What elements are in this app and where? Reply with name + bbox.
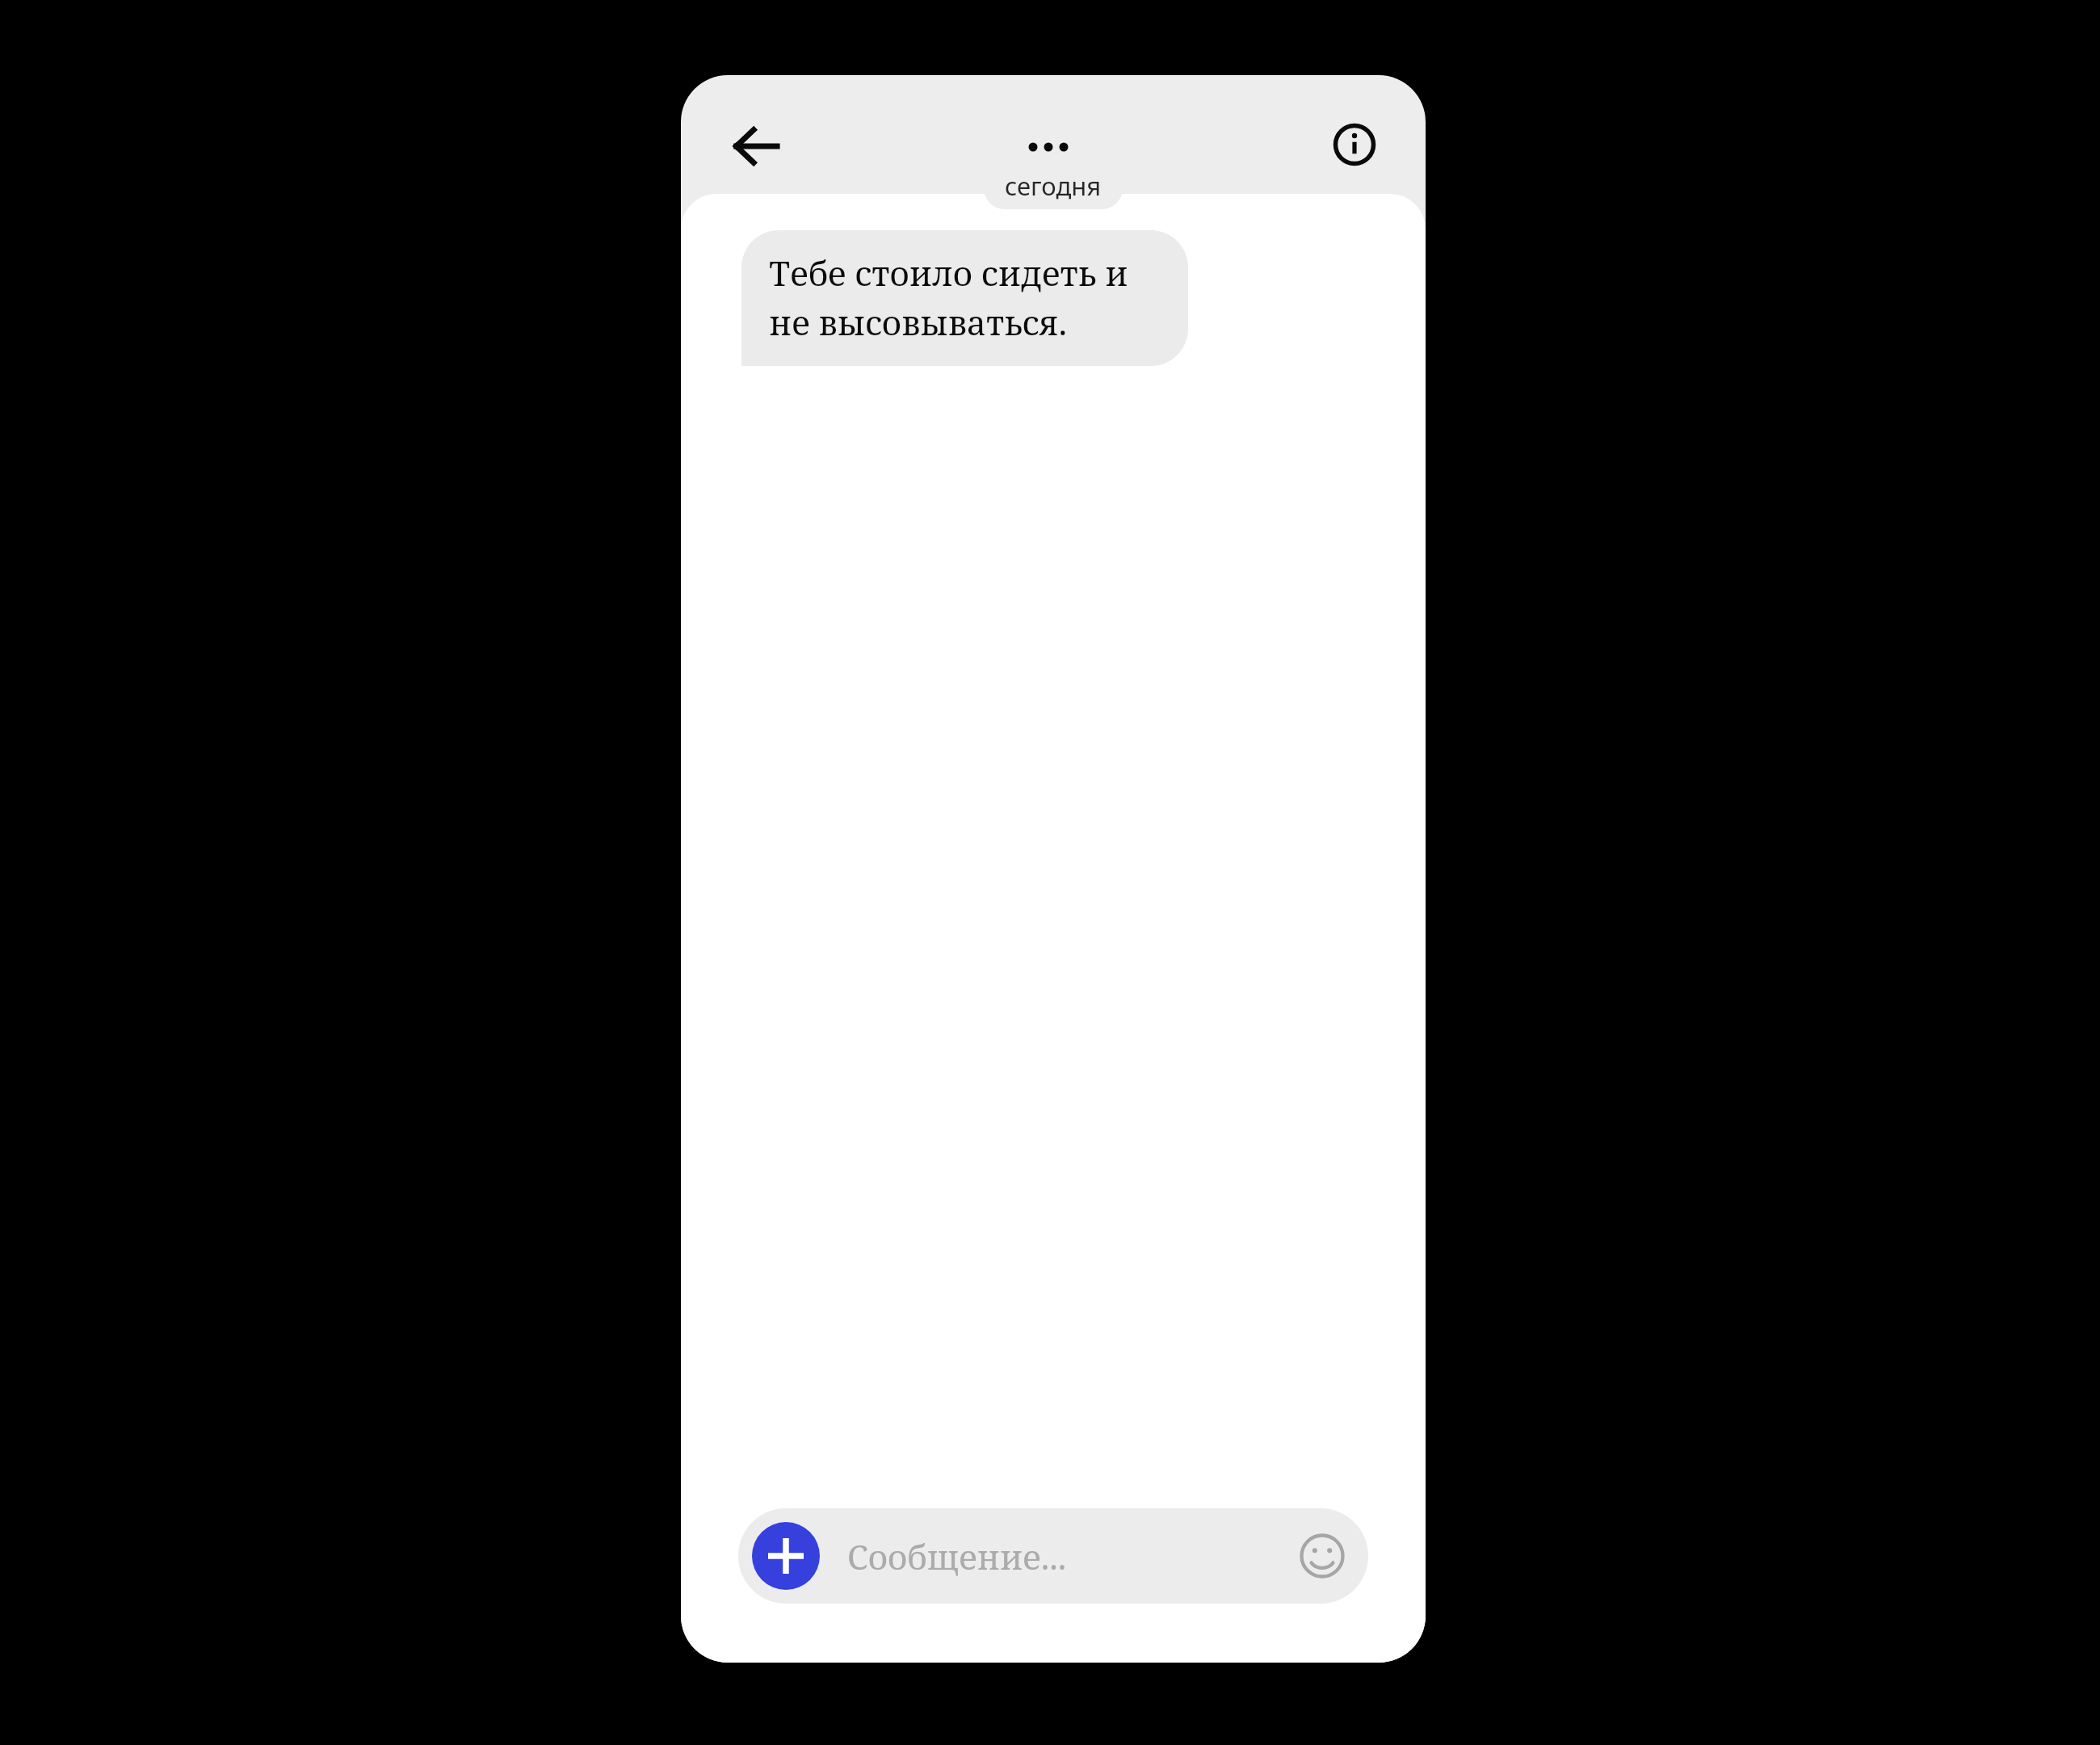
button[interactable]: Info [1313,103,1396,186]
staticText: Сообщение... [847,1533,1067,1579]
button[interactable]: Attach [752,1522,820,1590]
button[interactable]: Back [712,102,800,191]
button[interactable]: Emoji [1286,1520,1359,1592]
button[interactable] [988,119,1109,175]
button[interactable]: Тебе стоило сидеть и не высовываться. [741,230,1188,366]
staticText: Тебе стоило сидеть и не высовываться. [769,250,1167,345]
button[interactable]: Attach [738,1508,1368,1604]
staticText: сегодня [1005,169,1102,203]
